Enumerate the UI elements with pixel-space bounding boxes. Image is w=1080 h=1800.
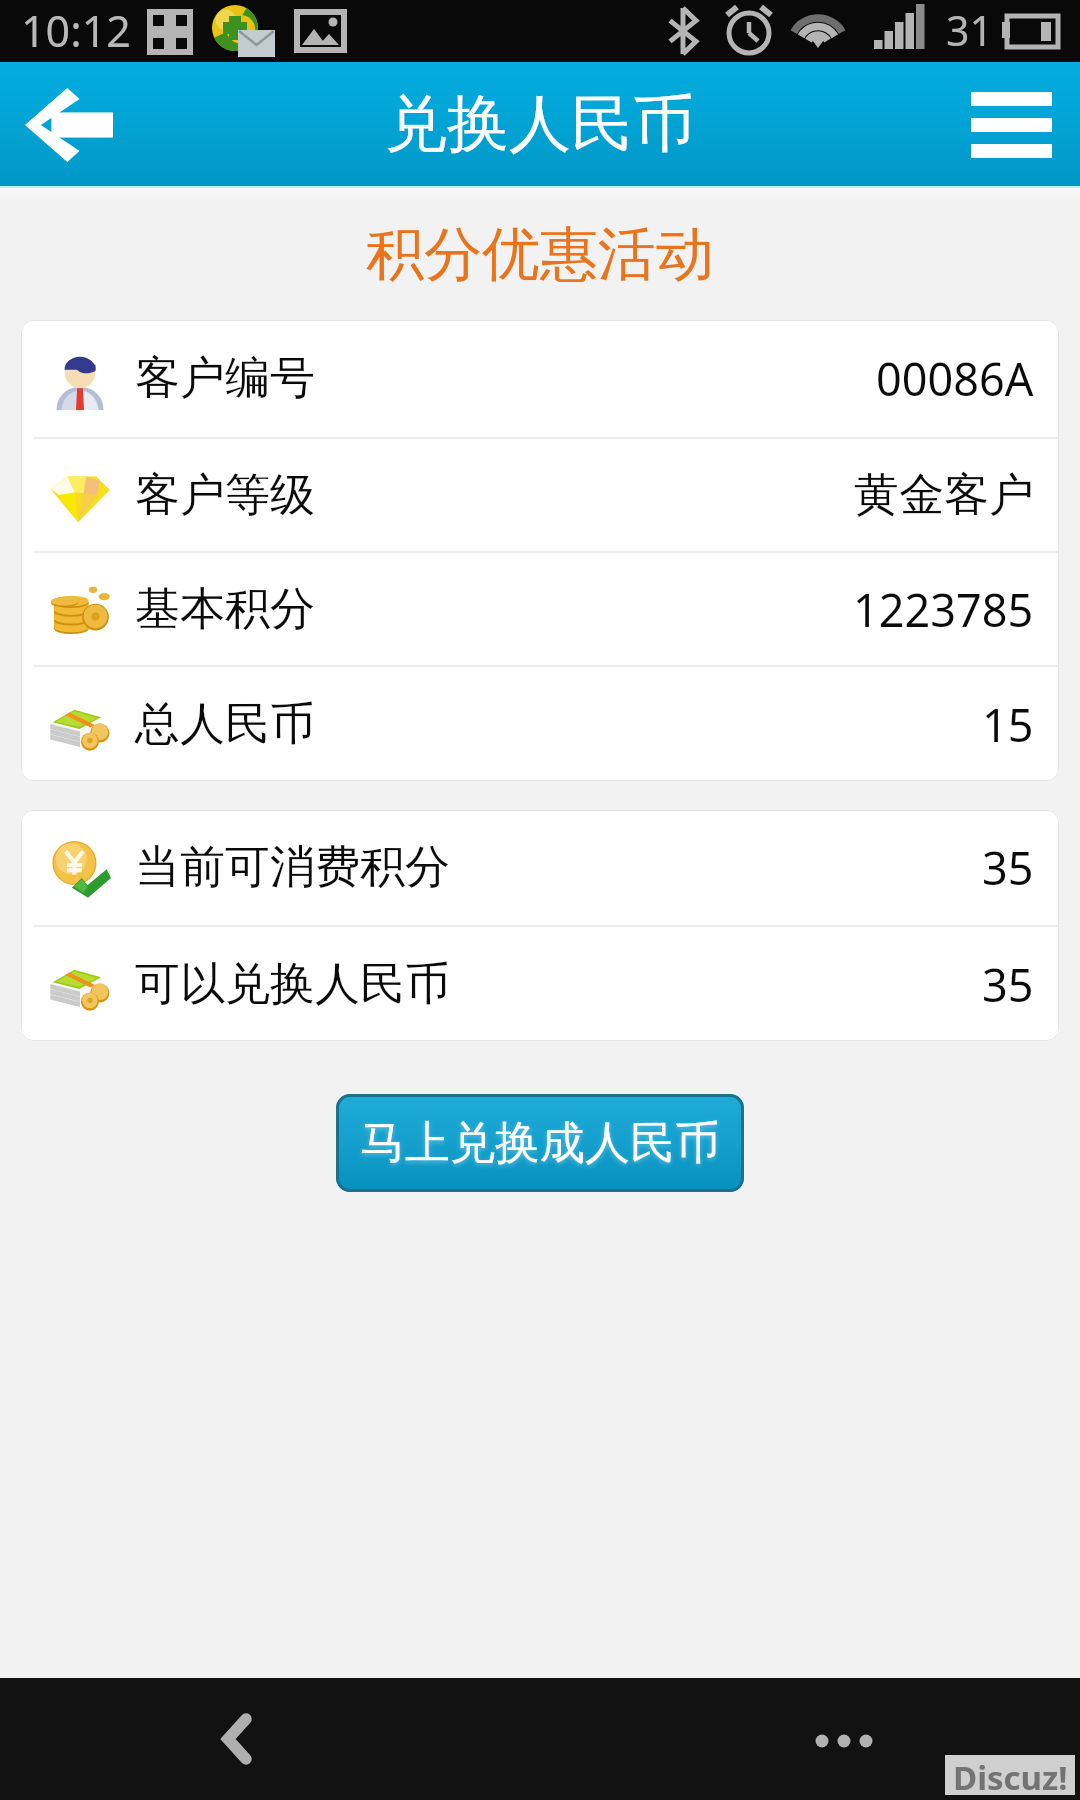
staticText: 黄金客户	[854, 467, 1034, 524]
staticText: 客户等级	[135, 467, 315, 524]
staticText: 总人民币	[135, 696, 315, 753]
staticText: 1223785	[853, 579, 1034, 640]
staticText: 兑换人民币	[385, 85, 695, 163]
staticText: 15	[982, 694, 1034, 755]
staticText: 积分优惠活动	[0, 218, 1080, 291]
button[interactable]: Back	[200, 1699, 276, 1779]
staticText: 31	[946, 2, 993, 58]
staticText: Discuz!	[953, 1755, 1068, 1795]
button[interactable]: Back	[0, 62, 150, 188]
button[interactable]: 可以兑换人民币	[21, 927, 1059, 1041]
button[interactable]: 当前可消费积分	[21, 810, 1059, 925]
button[interactable]: More options	[808, 1717, 880, 1761]
staticText: 35	[982, 954, 1034, 1015]
staticText: 客户编号	[135, 350, 315, 407]
staticText: 35	[982, 837, 1034, 898]
staticText: 当前可消费积分	[135, 839, 450, 896]
button[interactable]: 客户等级	[21, 439, 1059, 551]
button[interactable]: 总人民币	[21, 667, 1059, 781]
button[interactable]: Menu	[930, 62, 1080, 188]
staticText: 马上兑换成人民币	[360, 1115, 720, 1172]
staticText: 基本积分	[135, 581, 315, 638]
button[interactable]: 基本积分	[21, 553, 1059, 665]
staticText: 00086A	[876, 348, 1034, 409]
button[interactable]: 客户编号	[21, 320, 1059, 437]
staticText: 10:12	[21, 1, 131, 60]
button[interactable]: 马上兑换成人民币	[336, 1094, 744, 1192]
staticText: 可以兑换人民币	[135, 956, 450, 1013]
